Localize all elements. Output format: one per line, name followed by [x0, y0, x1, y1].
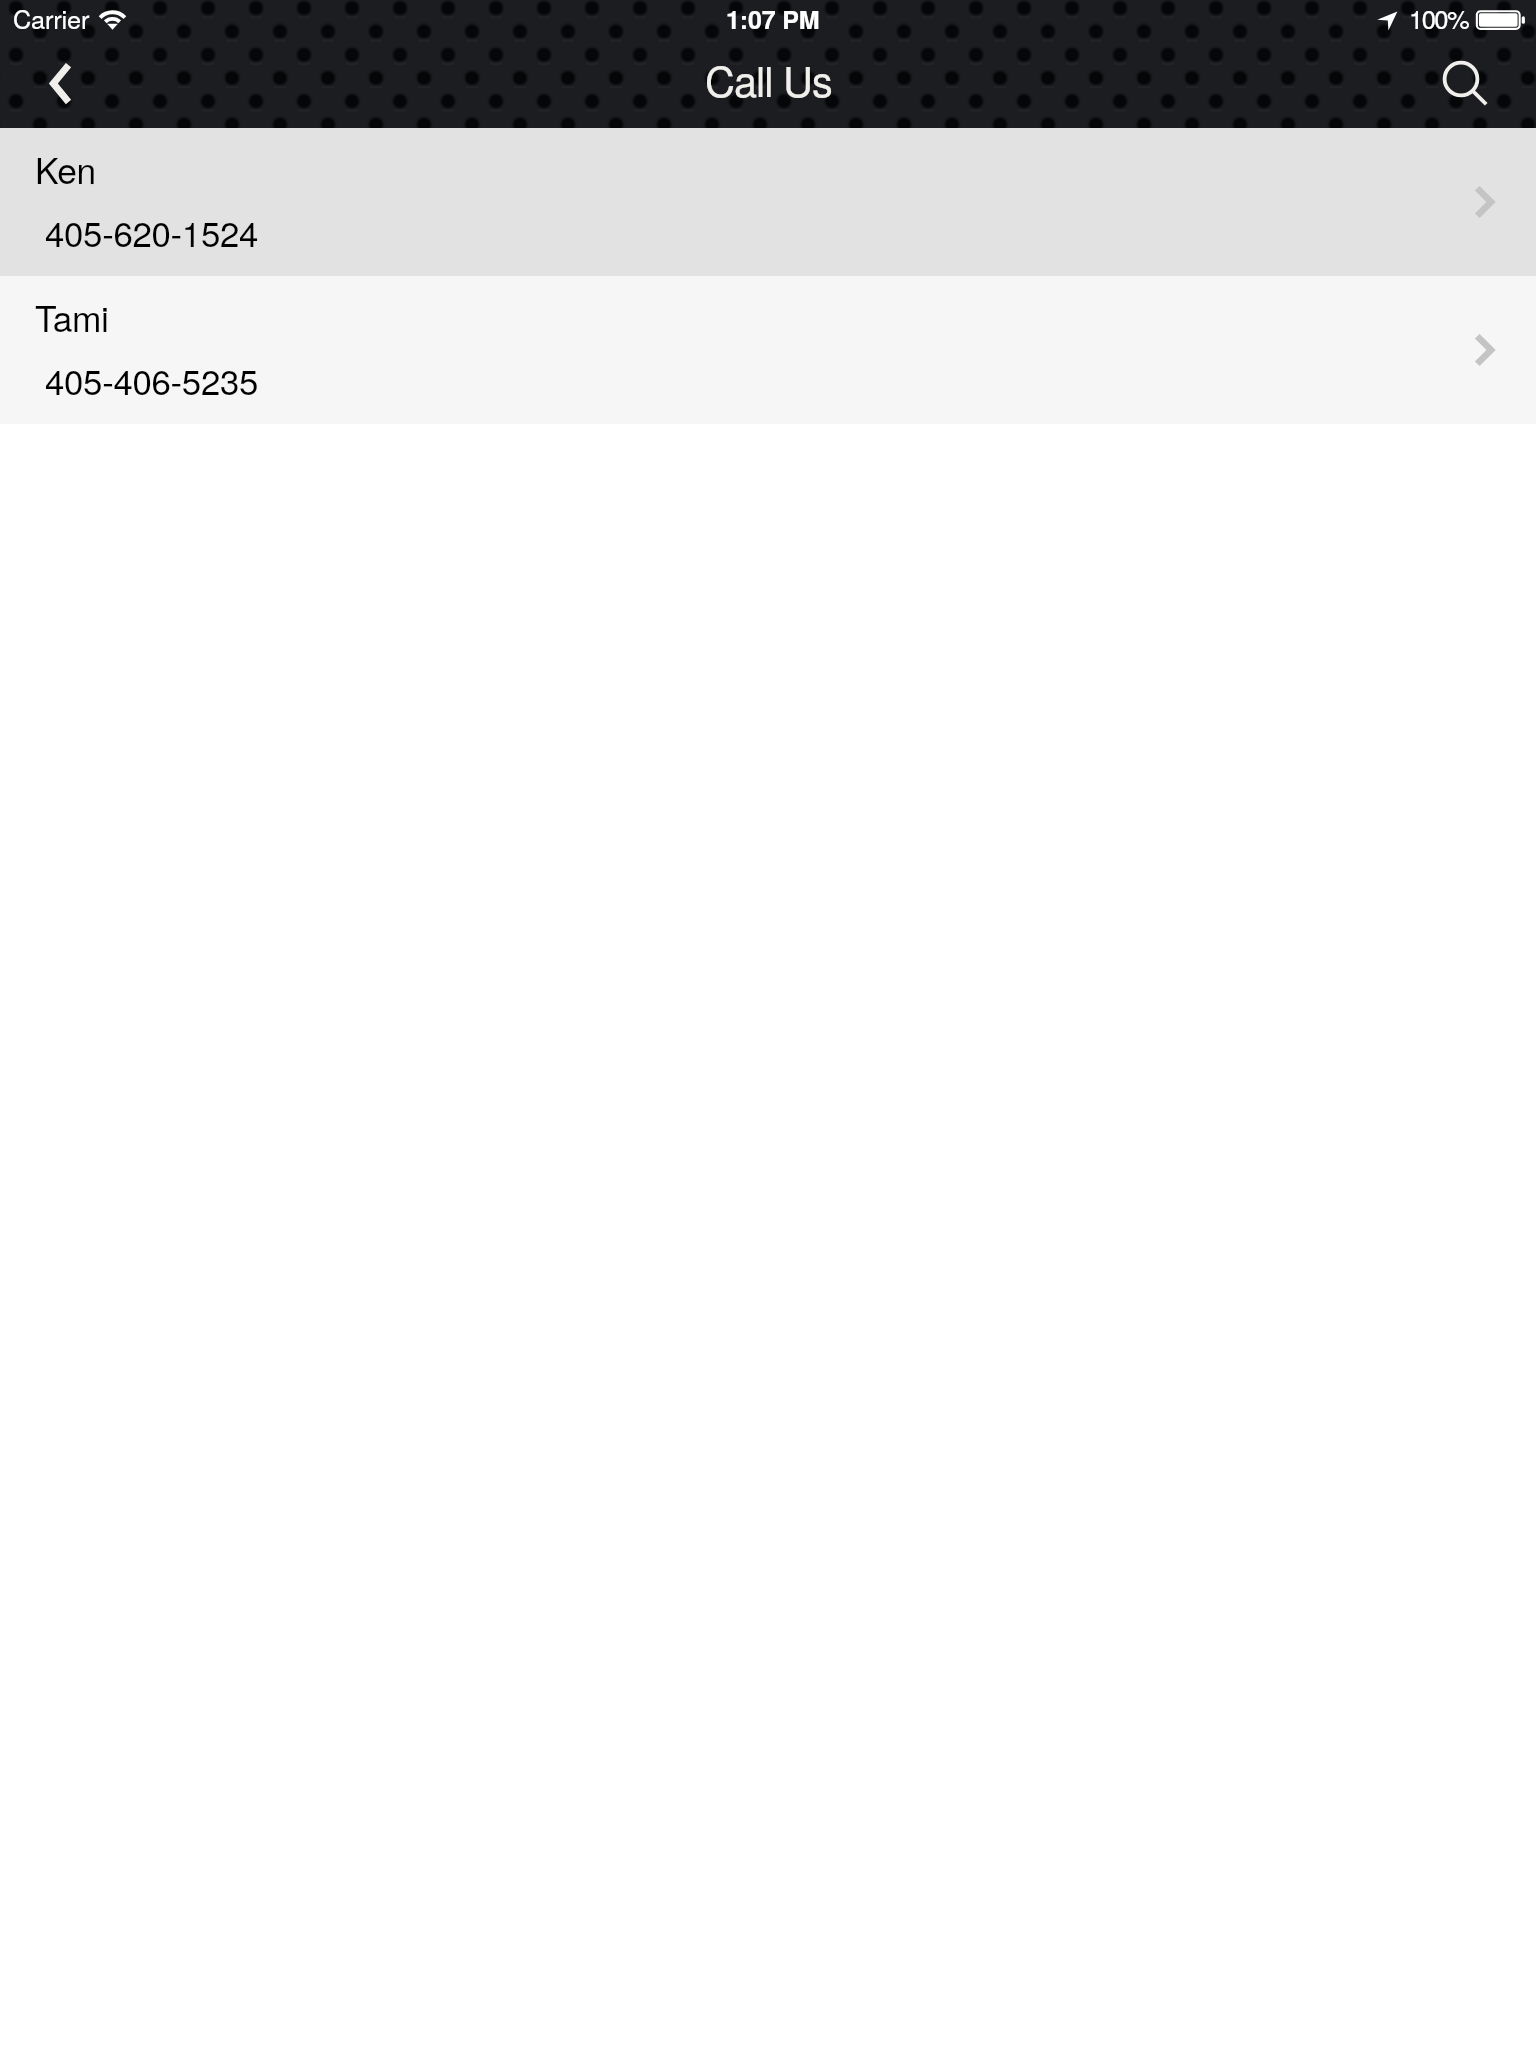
button[interactable]: Tami	[0, 276, 1536, 424]
staticText: Call Us	[705, 49, 832, 108]
button[interactable]: Ken	[0, 128, 1536, 276]
staticText: 1:07 PM	[726, 1, 820, 37]
button[interactable]: Back	[0, 40, 120, 128]
staticText: Carrier	[13, 0, 90, 36]
staticText: Ken	[35, 143, 96, 194]
staticText: 405-406-5235	[45, 355, 259, 405]
staticText: 405-620-1524	[45, 207, 259, 257]
staticText: 100%	[1409, 0, 1469, 37]
staticText: Tami	[35, 291, 109, 342]
button[interactable]: Search	[1416, 40, 1536, 128]
